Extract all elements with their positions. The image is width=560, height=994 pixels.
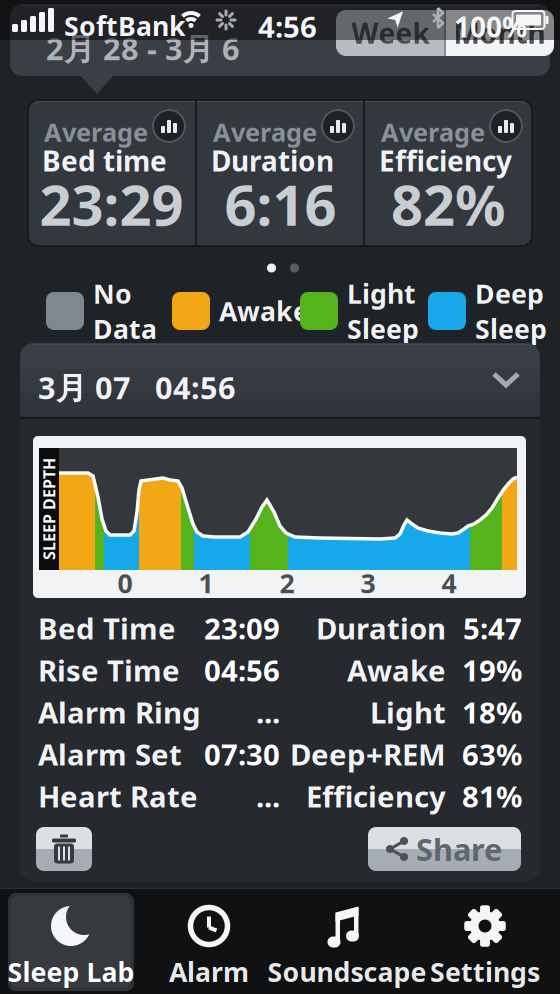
staticText: Awake — [219, 293, 309, 329]
button[interactable]: Month — [445, 10, 554, 56]
staticText: Bed time — [42, 142, 167, 179]
staticText: Average — [213, 115, 317, 149]
staticText: 07:30 — [204, 734, 280, 773]
staticText: 2 — [279, 565, 294, 601]
staticText: No Data — [93, 276, 157, 346]
staticText: Duration — [316, 608, 446, 647]
staticText: SoftBank — [64, 8, 186, 43]
staticText: 18% — [462, 692, 522, 731]
staticText: Soundscape — [267, 954, 426, 989]
button[interactable]: Soundscape — [284, 893, 410, 989]
button[interactable]: Alarm — [146, 893, 272, 989]
staticText: Efficiency — [306, 776, 446, 815]
staticText: 23:29 — [39, 167, 183, 241]
staticText: Light Sleep — [347, 276, 419, 346]
button[interactable]: Statistics chart — [321, 109, 355, 143]
staticText: Deep Sleep — [475, 276, 547, 346]
button[interactable]: Sleep Lab — [8, 893, 134, 989]
staticText: 19% — [462, 650, 522, 689]
staticText: Sleep Lab — [7, 954, 134, 989]
staticText: Heart Rate — [38, 776, 198, 815]
staticText: 3月 07 04:56 — [38, 367, 236, 408]
staticText: Average — [44, 115, 148, 149]
staticText: 63% — [462, 734, 522, 773]
staticText: Bed Time — [38, 608, 176, 647]
staticText: 1 — [198, 565, 213, 601]
staticText: SLEEP DEPTH — [0, 498, 100, 520]
button[interactable]: Delete — [36, 827, 92, 871]
staticText: Average — [381, 115, 485, 149]
staticText: Light — [370, 692, 446, 731]
staticText: Duration — [211, 142, 334, 179]
staticText: 04:56 — [204, 650, 280, 689]
staticText: 4:56 — [258, 7, 317, 46]
staticText: Settings — [430, 954, 540, 989]
staticText: Share — [416, 829, 502, 869]
button[interactable]: Week — [336, 10, 445, 56]
staticText: 4 — [441, 565, 456, 601]
button[interactable]: Share — [368, 827, 521, 871]
staticText: 2月 28 - 3月 6 — [46, 28, 240, 69]
staticText: Rise Time — [38, 650, 180, 689]
staticText: Alarm Set — [38, 734, 182, 773]
staticText: 100% — [454, 8, 527, 45]
staticText: Deep+REM — [290, 734, 446, 773]
staticText: Alarm — [169, 954, 249, 989]
staticText: Efficiency — [379, 142, 512, 179]
staticText: 3 — [360, 565, 375, 601]
button[interactable]: Settings — [422, 893, 548, 989]
staticText: ... — [256, 692, 280, 731]
staticText: 82% — [391, 167, 506, 241]
staticText: 23:09 — [204, 608, 280, 647]
button[interactable]: 3月 07 04:56 — [20, 343, 540, 417]
staticText: ... — [256, 776, 280, 815]
staticText: 81% — [462, 776, 522, 815]
staticText: 5:47 — [463, 608, 522, 647]
button[interactable]: Statistics chart — [489, 109, 523, 143]
staticText: Week — [351, 14, 429, 52]
staticText: Awake — [347, 650, 446, 689]
staticText: Alarm Ring — [38, 692, 201, 731]
staticText: Month — [453, 14, 545, 52]
staticText: 0 — [117, 565, 132, 601]
staticText: 6:16 — [224, 167, 336, 241]
button[interactable]: Statistics chart — [152, 109, 186, 143]
